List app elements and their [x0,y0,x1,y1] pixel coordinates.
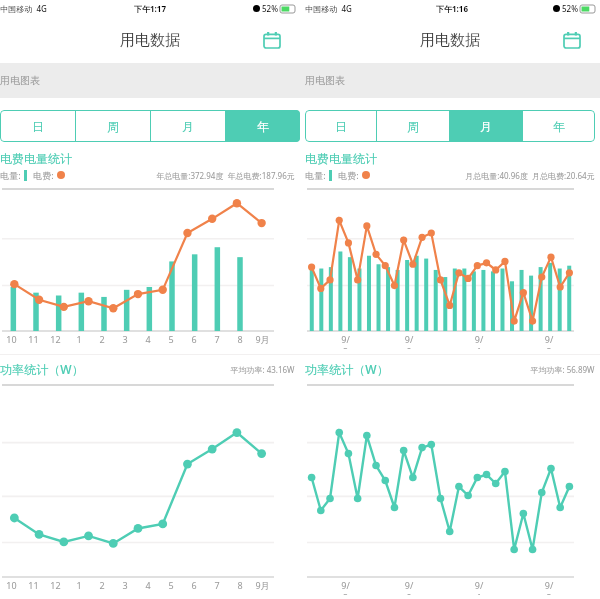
staticText: 电量: [0,169,21,181]
staticText: 8 [237,579,243,591]
staticText: 9/23 [544,333,554,349]
staticText: 功率统计（W） [0,361,84,377]
staticText: 电费电量统计 [0,151,72,166]
button[interactable]: 月 [151,110,225,142]
staticText: 2 [99,333,105,345]
staticText: 月总电量:40.96度 月总电费:20.64元 [465,170,595,181]
staticText: 8 [237,333,243,345]
staticText: 11 [28,579,39,591]
staticText: 中国移动 4G [305,3,352,14]
staticText: 年 [553,119,565,134]
staticText: 9/9 [404,333,414,349]
staticText: 9月 [255,579,270,591]
staticText: 日 [335,119,347,134]
staticText: 年总电量:372.94度 年总电费:187.96元 [156,170,295,181]
staticText: 周 [407,119,419,134]
staticText: 52% [562,3,578,14]
button[interactable]: 周 [76,110,150,142]
staticText: 平均功率: 56.89W [530,364,595,375]
staticText: 2 [99,579,105,591]
staticText: 用电图表 [0,74,40,87]
staticText: 月 [182,119,194,134]
staticText: 功率统计（W） [305,361,389,377]
staticText: 12 [50,579,61,591]
staticText: 4 [145,579,151,591]
staticText: 5 [168,579,174,591]
button[interactable]: 年 [226,110,300,142]
staticText: 用电数据 [420,31,480,50]
staticText: 6 [191,333,197,345]
staticText: 日 [32,119,44,134]
staticText: 用电图表 [305,74,345,87]
staticText: 周 [107,119,119,134]
staticText: 9/16 [474,333,484,349]
staticText: 10 [6,333,17,345]
staticText: 1 [76,579,82,591]
staticText: 9/23 [544,579,554,595]
staticText: 5 [168,333,174,345]
staticText: 11 [28,333,39,345]
button[interactable]: 日 [0,110,75,142]
button[interactable]: 年 [523,110,595,142]
staticText: 电费电量统计 [305,151,377,166]
staticText: 12 [50,333,61,345]
staticText: 电费: [33,169,54,181]
staticText: 电量: [305,169,326,181]
button[interactable]: 日 [305,110,376,142]
staticText: 9月 [255,333,270,345]
staticText: 9/2 [341,333,350,349]
staticText: 7 [214,333,220,345]
staticText: 9/9 [404,579,414,595]
staticText: 下午1:16 [436,3,468,14]
button[interactable]: Calendar [258,26,286,54]
staticText: 3 [122,333,128,345]
staticText: 电费: [338,169,359,181]
staticText: 9/2 [341,579,350,595]
button[interactable]: Calendar [558,26,586,54]
staticText: 下午1:17 [134,3,166,14]
staticText: 中国移动 4G [0,3,47,14]
staticText: 9/16 [474,579,484,595]
button[interactable]: 周 [377,110,449,142]
staticText: 1 [76,333,82,345]
staticText: 3 [122,579,128,591]
staticText: 平均功率: 43.16W [230,364,295,375]
staticText: 6 [191,579,197,591]
staticText: 4 [145,333,151,345]
staticText: 用电数据 [120,31,180,50]
staticText: 7 [214,579,220,591]
staticText: 52% [262,3,278,14]
staticText: 10 [6,579,17,591]
staticText: 月 [480,119,492,134]
staticText: 年 [257,119,269,134]
button[interactable]: 月 [450,110,522,142]
